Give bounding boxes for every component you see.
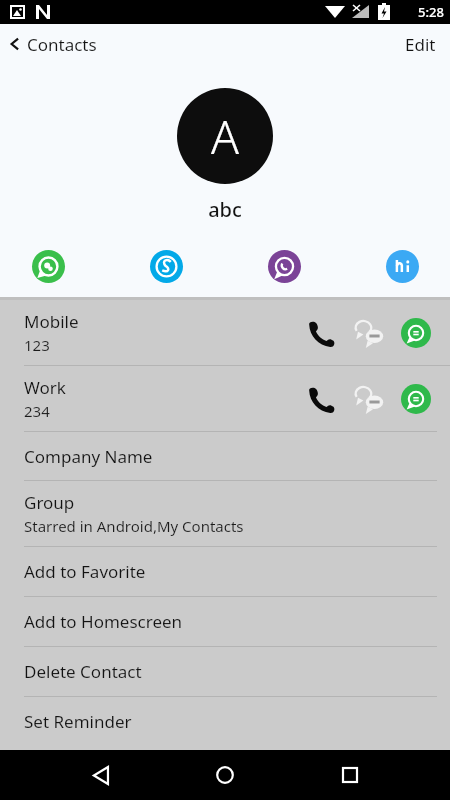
button[interactable]: Home (201, 751, 249, 799)
staticText: Starred in Android,My Contacts (24, 516, 244, 536)
staticText: Delete Contact (24, 660, 142, 683)
button[interactable]: Mobile (0, 300, 450, 365)
staticText: 234 (24, 401, 50, 421)
staticText: abc (208, 196, 242, 223)
button[interactable]: Call Work (298, 377, 342, 421)
button[interactable]: Recent apps (326, 751, 374, 799)
staticText: A (211, 105, 239, 168)
staticText: Add to Favorite (24, 560, 146, 583)
button[interactable]: Contact photo (177, 88, 273, 184)
button[interactable]: WhatsApp (30, 248, 66, 284)
button[interactable]: Add to Favorite (0, 547, 450, 596)
button[interactable]: Message Mobile (396, 313, 436, 353)
button[interactable]: Send SMS to Mobile (348, 311, 392, 355)
button[interactable]: Work (0, 366, 450, 431)
button[interactable]: Delete Contact (0, 647, 450, 696)
staticText: Mobile (24, 310, 79, 333)
button[interactable]: Skype (148, 248, 184, 284)
staticText: Set Reminder (24, 710, 132, 733)
button[interactable]: Message Work (396, 379, 436, 419)
button[interactable]: Group (0, 481, 450, 546)
staticText: 5:28 (418, 3, 444, 21)
button[interactable]: Viber (266, 248, 302, 284)
button[interactable]: Hike (384, 248, 420, 284)
staticText: Edit (405, 33, 436, 56)
button[interactable]: Edit (391, 24, 450, 64)
staticText: Add to Homescreen (24, 610, 183, 633)
button[interactable]: Set Reminder (0, 697, 450, 746)
button[interactable]: Call Mobile (298, 311, 342, 355)
staticText: Contacts (27, 33, 97, 56)
staticText: 123 (24, 335, 50, 355)
button[interactable]: Send SMS to Work (348, 377, 392, 421)
staticText: Work (24, 376, 66, 399)
staticText: Group (24, 491, 75, 514)
button[interactable]: Back (77, 751, 125, 799)
staticText: Company Name (24, 445, 153, 468)
button[interactable]: Add to Homescreen (0, 597, 450, 646)
button[interactable]: Contacts (0, 24, 107, 64)
button[interactable]: Company Name (0, 432, 450, 480)
